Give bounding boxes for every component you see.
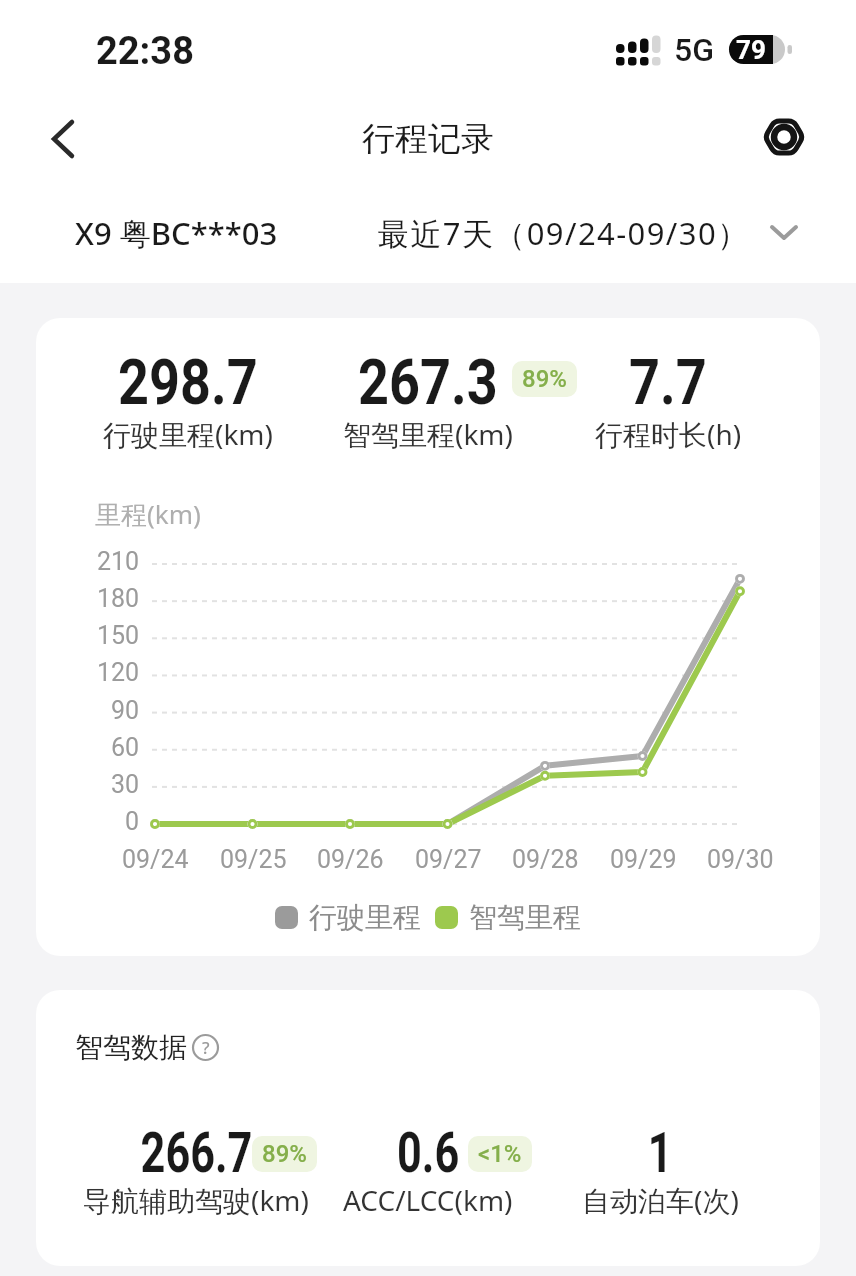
- staticText: 60: [111, 733, 140, 762]
- staticText: 09/28: [512, 845, 579, 874]
- staticText: 7.7: [629, 345, 707, 420]
- staticText: 0.6: [397, 1121, 460, 1185]
- button[interactable]: ?: [192, 1034, 219, 1061]
- button[interactable]: 最近7天（09/24-09/30）: [378, 182, 798, 283]
- staticText: ACC/LCC(km): [343, 1181, 513, 1219]
- staticText: 09/25: [220, 845, 287, 874]
- staticText: 120: [97, 658, 140, 687]
- staticText: 行驶里程(km): [103, 415, 273, 453]
- staticText: 0: [125, 807, 140, 836]
- staticText: 09/30: [707, 845, 774, 874]
- staticText: 266.7: [141, 1121, 252, 1185]
- staticText: 09/24: [122, 845, 189, 874]
- staticText: 自动泊车(次): [582, 1181, 739, 1219]
- staticText: 5G: [674, 31, 714, 69]
- staticText: 90: [111, 696, 140, 725]
- staticText: 22:38: [96, 29, 194, 74]
- button[interactable]: [756, 109, 812, 165]
- staticText: 298.7: [118, 345, 258, 420]
- staticText: 智驾数据: [75, 1030, 187, 1065]
- button[interactable]: X9 粤BC***03: [75, 182, 278, 283]
- staticText: 导航辅助驾驶(km): [83, 1181, 309, 1219]
- staticText: 180: [97, 584, 140, 613]
- staticText: X9 粤BC***03: [75, 212, 278, 254]
- staticText: <1%: [478, 1140, 522, 1168]
- staticText: 最近7天（09/24-09/30）: [378, 212, 750, 254]
- staticText: 09/29: [610, 845, 677, 874]
- staticText: ?: [202, 1036, 210, 1059]
- staticText: 79: [736, 35, 766, 64]
- staticText: 智驾里程: [469, 900, 581, 935]
- button[interactable]: [40, 116, 86, 162]
- staticText: 89%: [522, 365, 567, 393]
- staticText: 行程记录: [362, 118, 494, 160]
- staticText: 行驶里程: [309, 900, 421, 935]
- staticText: 09/26: [317, 845, 384, 874]
- staticText: 267.3: [358, 345, 498, 420]
- staticText: 150: [97, 621, 140, 650]
- staticText: 89%: [262, 1140, 307, 1168]
- staticText: 09/27: [415, 845, 482, 874]
- staticText: 30: [111, 770, 140, 799]
- staticText: 里程(km): [95, 496, 201, 532]
- staticText: 行程时长(h): [595, 415, 742, 453]
- staticText: 210: [97, 547, 140, 576]
- staticText: 智驾里程(km): [343, 415, 513, 453]
- staticText: 1: [648, 1121, 673, 1185]
